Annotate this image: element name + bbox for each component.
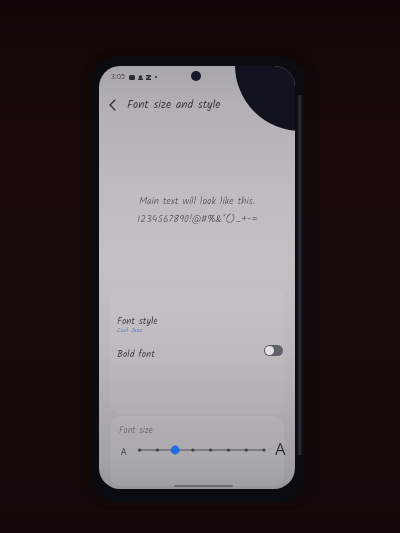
button[interactable]: Bold font xyxy=(99,341,295,367)
staticText: Cool Jazz xyxy=(117,325,143,335)
staticText: Font size xyxy=(119,423,153,437)
staticText: A xyxy=(121,446,127,458)
staticText: A xyxy=(275,437,286,459)
staticText: 3:05 xyxy=(111,72,125,82)
button[interactable]: Bold font, off xyxy=(264,345,283,356)
staticText: Main text will look like this. xyxy=(139,193,256,209)
staticText: Font size and style xyxy=(127,96,221,114)
staticText: Font style xyxy=(117,314,158,329)
button[interactable]: Navigate up xyxy=(99,92,125,118)
staticText: 1234567890!@#%&*()_+-= xyxy=(137,211,258,227)
button[interactable]: Font style xyxy=(99,305,295,339)
staticText: Bold font xyxy=(117,347,155,362)
